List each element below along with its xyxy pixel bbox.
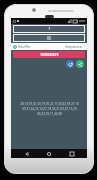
button[interactable]: Home: [42, 149, 56, 158]
button[interactable]: [13, 34, 85, 42]
button[interactable]: Refresh: [66, 60, 74, 68]
button[interactable]: Back: [20, 149, 34, 158]
button[interactable]: Share: [76, 60, 84, 68]
button[interactable]: Sequence: [65, 43, 82, 50]
button[interactable]: GENERATE: [13, 51, 85, 58]
staticText: 09,31,44,25,12,07,18,36,21,03,47,15,29: [22, 107, 77, 111]
staticText: 28,14,07,41,33,19,05,22,11,46,02,38,27,1…: [20, 102, 79, 106]
staticText: GENERATE: [40, 52, 59, 57]
staticText: 1: [48, 26, 51, 32]
button[interactable]: 1: [13, 25, 85, 33]
staticText: Sequence: [65, 44, 82, 49]
button[interactable]: Recent apps: [65, 149, 79, 158]
button[interactable]: Shuffle: [13, 43, 65, 50]
staticText: 06,23,39,11,42,08: [37, 112, 62, 116]
staticText: Shuffle: [18, 44, 30, 49]
